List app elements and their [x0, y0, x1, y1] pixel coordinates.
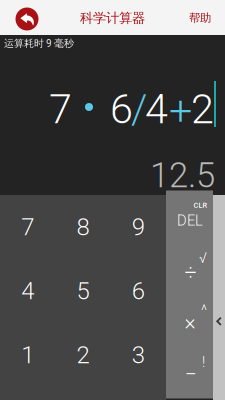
button[interactable]: CLR	[166, 192, 213, 244]
staticText: 科学计算器	[80, 10, 145, 26]
button[interactable]: 1	[0, 323, 55, 387]
staticText: ÷	[184, 260, 196, 285]
staticText: 运算耗时 9 毫秒	[4, 37, 74, 50]
staticText: −	[184, 361, 196, 386]
staticText: ×	[184, 310, 195, 335]
button[interactable]: 帮助	[181, 0, 225, 35]
staticText: +	[169, 87, 192, 135]
button[interactable]: Show more keys	[213, 195, 225, 400]
staticText: 2	[76, 341, 89, 369]
button[interactable]: Back	[0, 1, 44, 34]
button[interactable]: 8	[55, 195, 111, 259]
staticText: √	[199, 249, 207, 266]
staticText: 3	[132, 341, 145, 369]
staticText: 12.5	[150, 155, 215, 196]
staticText: 9	[132, 213, 145, 241]
staticText: !	[202, 353, 205, 371]
button[interactable]: 2	[55, 323, 111, 387]
staticText: /	[131, 85, 147, 133]
button[interactable]: √	[166, 244, 213, 295]
staticText: ^	[201, 301, 207, 319]
staticText: 4	[145, 85, 168, 133]
staticText: 6	[132, 277, 145, 305]
button[interactable]: !	[166, 347, 213, 398]
button[interactable]: ^	[166, 295, 213, 347]
staticText: 帮助	[189, 11, 211, 25]
staticText: 4	[21, 277, 34, 305]
staticText: 2	[191, 85, 214, 133]
staticText: 1	[21, 341, 34, 369]
button[interactable]: 4	[0, 259, 55, 323]
staticText: 8	[76, 213, 89, 241]
staticText: 5	[76, 277, 89, 305]
button[interactable]: 5	[55, 259, 111, 323]
button[interactable]: 6	[111, 259, 166, 323]
staticText: DEL	[177, 212, 203, 229]
staticText: CLR	[193, 201, 207, 210]
button[interactable]: 3	[111, 323, 166, 387]
button[interactable]: 7	[0, 195, 55, 259]
staticText: 7	[21, 213, 34, 241]
staticText: 6	[110, 85, 133, 133]
button[interactable]: 9	[111, 195, 166, 259]
staticText: 7	[49, 85, 72, 133]
